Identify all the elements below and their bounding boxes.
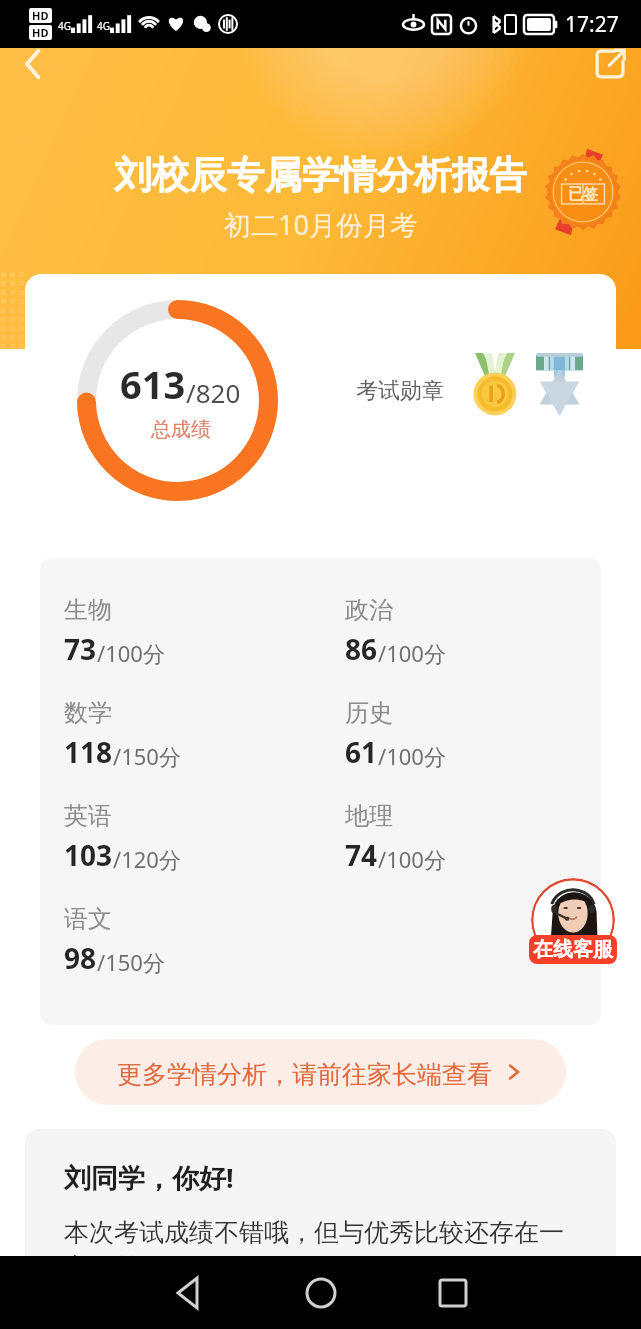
staticText: 86 [345, 630, 378, 668]
staticText: 74 [345, 836, 378, 874]
button[interactable]: Home [271, 1256, 371, 1329]
button[interactable]: 更多学情分析，请前往家长端查看 [75, 1039, 566, 1105]
staticText: 更多学情分析，请前往家长端查看 [117, 1059, 492, 1090]
staticText: 在线客服 [533, 937, 613, 962]
staticText: 61 [345, 733, 378, 771]
button[interactable]: Share [586, 40, 634, 88]
staticText: /100分 [97, 638, 165, 668]
staticText: /100分 [378, 638, 446, 668]
staticText: 刘校辰专属学情分析报告 [0, 152, 641, 199]
staticText: /100分 [378, 844, 446, 874]
staticText: /150分 [113, 741, 181, 771]
staticText: /120分 [113, 844, 181, 874]
staticText: 4G [97, 19, 110, 33]
staticText: 生物 [64, 595, 112, 625]
staticText: 本次考试成绩不错哦，但与优秀比较还存在一定的差距 [64, 1217, 564, 1284]
staticText: /150分 [97, 947, 165, 977]
staticText: 已签 [568, 185, 598, 204]
staticText: 73 [64, 630, 97, 668]
button[interactable]: 在线客服 [527, 878, 619, 964]
staticText: 118 [64, 733, 113, 771]
staticText: 初二10月份月考 [0, 206, 641, 243]
staticText: 刘同学，你好! [64, 1159, 234, 1196]
button[interactable]: Back [9, 40, 57, 88]
staticText: /820 [186, 375, 241, 410]
staticText: 政治 [345, 595, 393, 625]
staticText: 总成绩 [151, 417, 211, 442]
staticText: /100分 [378, 741, 446, 771]
staticText: 语文 [64, 904, 112, 934]
staticText: 613 [120, 358, 186, 410]
staticText: 数学 [64, 698, 112, 728]
staticText: HD [32, 25, 49, 40]
staticText: 17:27 [565, 10, 619, 39]
button[interactable]: Back [139, 1256, 239, 1329]
staticText: 历史 [345, 698, 393, 728]
staticText: HD [32, 8, 49, 23]
staticText: 103 [64, 836, 113, 874]
staticText: 98 [64, 939, 97, 977]
button[interactable]: Recents [403, 1256, 503, 1329]
staticText: 地理 [345, 801, 393, 831]
staticText: 考试勋章 [356, 377, 444, 405]
staticText: 4G [58, 19, 71, 33]
staticText: 英语 [64, 801, 112, 831]
